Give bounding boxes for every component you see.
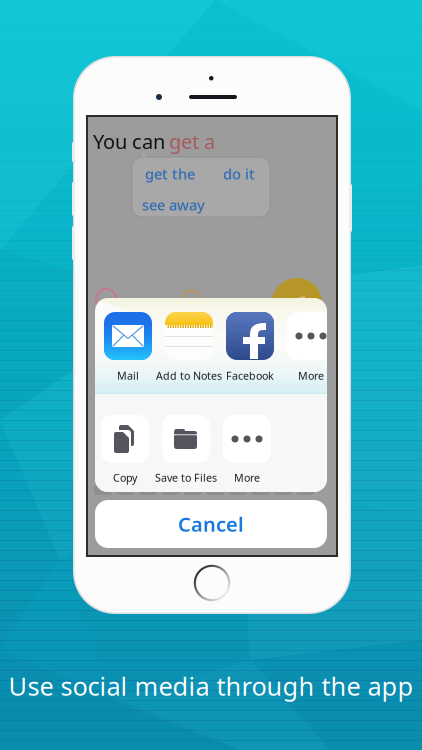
staticText: Add to Notes	[156, 368, 222, 383]
staticText: see away	[142, 195, 205, 214]
button[interactable]: Share destination	[165, 312, 213, 360]
staticText: Copy	[113, 470, 137, 485]
staticText: More	[298, 368, 324, 383]
button[interactable]: Share destination	[223, 415, 271, 463]
staticText: You can	[93, 128, 165, 155]
staticText: Facebook	[226, 368, 274, 383]
staticText: get the	[145, 164, 195, 183]
button[interactable]: Share destination	[162, 415, 210, 463]
staticText: Use social media through the app	[8, 669, 413, 703]
staticText: Save to Files	[155, 470, 217, 485]
staticText: Mail	[117, 368, 139, 383]
button[interactable]: Share destination	[104, 312, 152, 360]
button[interactable]: Share destination	[226, 312, 274, 360]
staticText: More	[234, 470, 260, 485]
button[interactable]: Cancel	[95, 500, 327, 548]
button[interactable]: Share destination	[101, 415, 149, 463]
staticText: Cancel	[178, 511, 244, 537]
button[interactable]: Share destination	[287, 312, 335, 360]
staticText: do it	[223, 164, 255, 183]
staticText: get a	[169, 128, 215, 155]
